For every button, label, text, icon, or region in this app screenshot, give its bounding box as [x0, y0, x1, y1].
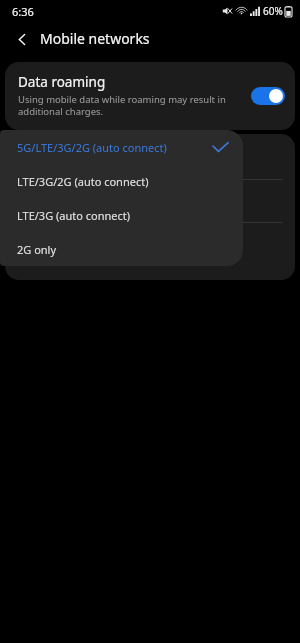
button[interactable]: Data roaming	[5, 62, 295, 130]
button[interactable]: Back	[8, 25, 36, 53]
staticText: 6:36	[12, 4, 34, 19]
button[interactable]: 5G/LTE/3G/2G (auto connect)	[0, 130, 243, 164]
button[interactable]	[5, 134, 295, 179]
staticText: 5G/LTE/3G/2G (auto connect)	[17, 140, 212, 155]
button[interactable]: LTE/3G (auto connect)	[0, 198, 243, 232]
staticText: LTE/3G (auto connect)	[17, 208, 212, 223]
staticText: LTE/3G/2G (auto connect)	[17, 174, 212, 189]
button[interactable]: LTE/3G/2G (auto connect)	[0, 164, 243, 198]
staticText: Using mobile data while roaming may resu…	[18, 93, 243, 118]
staticText: 60%	[263, 4, 283, 18]
button[interactable]	[5, 180, 295, 222]
staticText: Data roaming	[18, 73, 106, 91]
staticText: 2G only	[17, 242, 212, 257]
button[interactable]: 2G only	[0, 232, 243, 266]
button[interactable]	[5, 265, 295, 280]
button[interactable]	[5, 223, 295, 265]
button[interactable]: Data roaming toggle	[251, 87, 285, 105]
staticText: Mobile networks	[40, 29, 150, 48]
